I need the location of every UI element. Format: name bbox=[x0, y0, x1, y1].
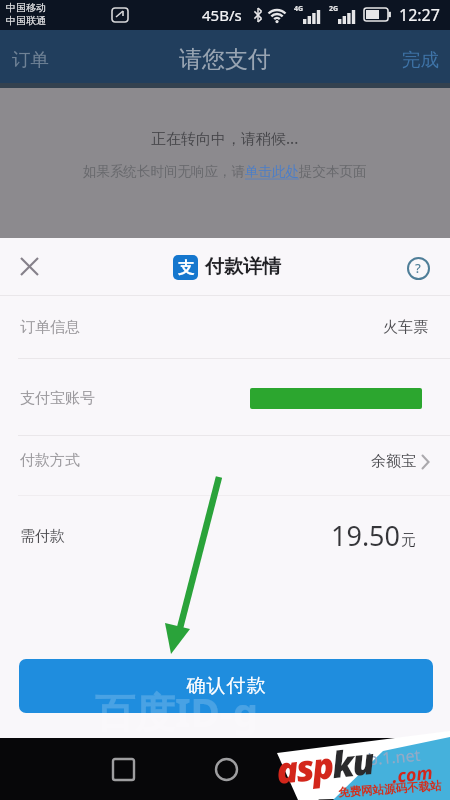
staticText: 免费网站源码不载站 bbox=[338, 778, 442, 800]
staticText: 如果系统长时间无响应，请 bbox=[83, 163, 245, 180]
staticText: asp bbox=[274, 740, 334, 795]
staticText: 付款方式 bbox=[20, 451, 80, 470]
button[interactable]: 确认付款 bbox=[19, 659, 433, 713]
staticText: 中国联通 bbox=[6, 14, 46, 27]
staticText: 余额宝 bbox=[371, 452, 416, 471]
staticText: 4G bbox=[294, 4, 304, 14]
staticText: ? bbox=[415, 259, 421, 277]
staticText: 付款详情 bbox=[205, 255, 281, 279]
staticText: 火车票 bbox=[383, 318, 428, 337]
staticText: b.1.net bbox=[367, 744, 422, 770]
button[interactable] bbox=[12, 249, 46, 283]
button[interactable]: 付款方式 bbox=[0, 443, 450, 479]
button[interactable] bbox=[108, 754, 138, 784]
staticText: ku bbox=[329, 736, 375, 789]
staticText: 完成 bbox=[402, 48, 439, 71]
staticText: 12:27 bbox=[399, 4, 440, 26]
button[interactable]: 完成 bbox=[386, 30, 450, 83]
staticText: 元 bbox=[401, 531, 416, 550]
staticText: 45B/s bbox=[202, 5, 242, 25]
staticText: 百度ID-g bbox=[95, 684, 258, 739]
staticText: 提交本页面 bbox=[299, 163, 367, 180]
button[interactable] bbox=[211, 754, 241, 784]
staticText: 正在转向中，请稍候... bbox=[151, 128, 299, 148]
staticText: 确认付款 bbox=[186, 674, 266, 698]
staticText: 订单信息 bbox=[20, 318, 80, 337]
staticText: 请您支付 bbox=[179, 45, 271, 74]
button[interactable]: 订单 bbox=[0, 30, 64, 83]
staticText: 订单 bbox=[12, 48, 49, 71]
staticText: .com bbox=[391, 760, 434, 789]
staticText: 需付款 bbox=[20, 527, 65, 546]
staticText: 中国移动 bbox=[6, 1, 46, 14]
staticText: 支 bbox=[178, 258, 194, 278]
button[interactable]: 单击此处 bbox=[245, 163, 299, 180]
staticText: 支付宝账号 bbox=[20, 389, 95, 408]
button[interactable]: ? bbox=[403, 253, 433, 283]
staticText: 2G bbox=[329, 4, 339, 14]
staticText: 19.50 bbox=[331, 517, 401, 554]
